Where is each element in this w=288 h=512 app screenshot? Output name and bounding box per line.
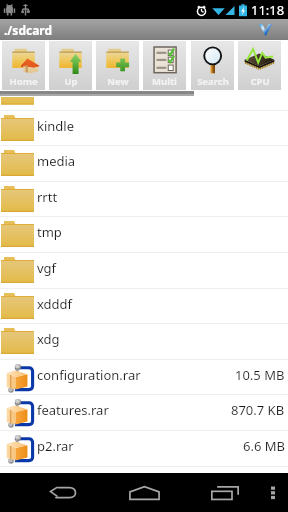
button[interactable]: Back <box>24 473 103 512</box>
button[interactable]: xdg <box>0 323 288 359</box>
button[interactable]: vgf <box>0 252 288 288</box>
staticText: configuration.rar <box>37 366 141 384</box>
staticText: New <box>107 75 129 88</box>
staticText: xdg <box>37 330 60 348</box>
button[interactable]: p2.rar <box>0 430 288 466</box>
button[interactable]: xdddf <box>0 288 288 324</box>
button[interactable]: Search <box>191 41 234 90</box>
button[interactable]: rrtt <box>0 181 288 217</box>
staticText: rrtt <box>37 188 58 206</box>
button[interactable]: tmp <box>0 216 288 252</box>
staticText: ./sdcard <box>4 22 53 38</box>
button[interactable]: CPU <box>238 41 281 90</box>
staticText: Home <box>9 75 38 88</box>
staticText: 10.5 MB <box>235 366 285 384</box>
staticText: vgf <box>37 259 57 277</box>
button[interactable]: features.rar <box>0 394 288 430</box>
staticText: 870.7 KB <box>231 401 285 419</box>
staticText: 11:18 <box>251 1 285 19</box>
staticText: kindle <box>37 117 75 135</box>
staticText: p2.rar <box>37 437 74 455</box>
staticText: Search <box>197 75 229 88</box>
button[interactable]: Recent apps <box>185 473 265 512</box>
staticText: 6.6 MB <box>243 437 285 455</box>
staticText: tmp <box>37 223 62 241</box>
button[interactable]: Up <box>49 41 92 90</box>
button[interactable]: Home <box>2 41 45 90</box>
button[interactable]: kindle <box>0 110 288 146</box>
staticText: features.rar <box>37 401 109 419</box>
staticText: media <box>37 152 76 170</box>
staticText: Up <box>64 75 78 88</box>
staticText: CPU <box>250 75 270 88</box>
button[interactable]: Home <box>104 473 184 512</box>
button[interactable]: media <box>0 145 288 181</box>
staticText: Multi <box>152 75 177 88</box>
button[interactable]: Multi <box>143 41 186 90</box>
button[interactable]: New <box>96 41 139 90</box>
button[interactable]: configuration.rar <box>0 359 288 395</box>
button[interactable]: More options <box>261 473 285 512</box>
staticText: xdddf <box>37 295 73 313</box>
button[interactable] <box>0 0 288 110</box>
